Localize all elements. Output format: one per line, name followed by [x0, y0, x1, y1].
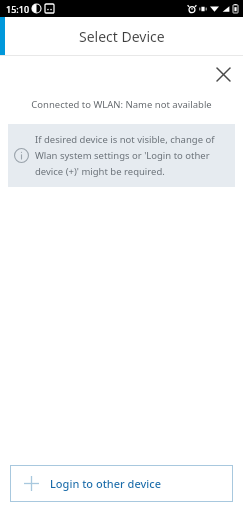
button[interactable]: Close	[210, 61, 236, 87]
staticText: Login to other device	[50, 476, 161, 491]
staticText: Select Device	[79, 27, 165, 46]
staticText: If desired device is not visible, change…	[35, 133, 215, 146]
button[interactable]: Login to other device	[10, 465, 233, 502]
staticText: device (+)' might be required.	[35, 165, 165, 178]
staticText: 15:10	[6, 3, 30, 15]
staticText: Connected to WLAN: Name not available	[31, 98, 212, 111]
staticText: Wlan system settings or 'Login to other	[35, 149, 210, 162]
